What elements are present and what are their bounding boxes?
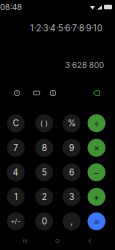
button[interactable]: 8 xyxy=(35,139,53,157)
staticText: + xyxy=(93,191,100,203)
staticText: , xyxy=(71,216,73,226)
staticText: ( ) xyxy=(40,119,48,127)
button[interactable]: Back xyxy=(85,236,95,246)
staticText: ÷ xyxy=(93,118,99,129)
button[interactable]: − xyxy=(87,163,105,181)
staticText: 2 xyxy=(42,192,47,202)
staticText: 08:48 xyxy=(0,2,22,12)
button[interactable]: 0 xyxy=(35,212,53,230)
staticText: = xyxy=(93,216,99,227)
staticText: 0 xyxy=(42,216,47,226)
staticText: 6 xyxy=(69,167,74,177)
button[interactable]: 2 xyxy=(35,188,53,206)
button[interactable]: Scientific xyxy=(49,89,57,97)
button[interactable]: 4 xyxy=(7,163,25,181)
staticText: − xyxy=(93,166,100,178)
staticText: 1·2·3·4·5·6·7·8·9·10 xyxy=(30,23,102,33)
staticText: +/− xyxy=(11,218,21,225)
staticText: 7 xyxy=(13,143,18,153)
staticText: 4 xyxy=(13,167,19,177)
staticText: 1 xyxy=(14,192,17,202)
button[interactable]: 6 xyxy=(63,163,80,181)
button[interactable]: +/− xyxy=(7,212,25,230)
button[interactable]: Unit converter xyxy=(32,89,41,97)
button[interactable]: Recents xyxy=(20,236,30,246)
button[interactable]: + xyxy=(87,188,105,206)
button[interactable]: 5 xyxy=(35,163,53,181)
button[interactable]: × xyxy=(87,139,105,157)
staticText: × xyxy=(93,142,99,153)
staticText: 8 xyxy=(42,143,47,153)
button[interactable]: Home xyxy=(52,236,62,246)
staticText: 9 xyxy=(69,143,74,153)
button[interactable]: = xyxy=(87,212,105,230)
button[interactable]: History xyxy=(13,89,21,97)
button[interactable]: ÷ xyxy=(87,114,105,132)
button[interactable]: 9 xyxy=(63,139,80,157)
button[interactable]: C xyxy=(7,114,25,132)
button[interactable]: 3 xyxy=(63,188,80,206)
button[interactable]: , xyxy=(63,212,80,230)
staticText: 3 xyxy=(69,192,74,202)
button[interactable]: 7 xyxy=(7,139,25,157)
staticText: 3 628 800 xyxy=(65,60,104,70)
staticText: C xyxy=(13,118,19,128)
button[interactable]: ( ) xyxy=(35,114,53,132)
staticText: 5 xyxy=(42,167,47,177)
button[interactable]: 1 xyxy=(7,188,25,206)
staticText: % xyxy=(68,118,76,128)
button[interactable]: Backspace xyxy=(93,89,101,97)
button[interactable]: % xyxy=(63,114,80,132)
